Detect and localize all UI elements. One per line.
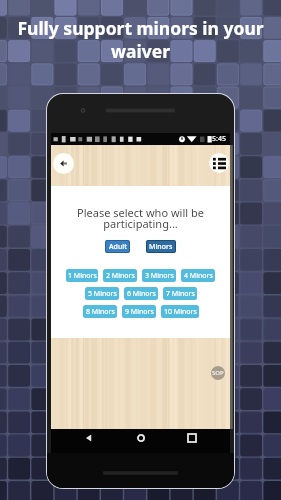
staticText: Minors [149,242,173,252]
button[interactable]: Adult [106,241,129,252]
staticText: 8 Minors [86,307,115,317]
staticText: 1 Minors [68,271,97,281]
staticText: 4 Minors [184,271,213,281]
staticText: 7 Minors [166,289,195,299]
button[interactable]: Minors [147,241,175,252]
button[interactable]: 2 Minors [103,269,137,282]
button[interactable]: 6 Minors [124,287,158,300]
button[interactable]: 10 Minors [161,305,199,318]
staticText: 5 Minors [88,289,117,299]
button[interactable]: 9 Minors [122,305,156,318]
staticText: 6 Minors [127,289,156,299]
staticText: 10 Minors [164,307,197,317]
button[interactable]: 4 Minors [181,269,215,282]
button[interactable]: 3 Minors [142,269,176,282]
button[interactable]: Back [53,153,74,174]
staticText: Please select who will be participating.… [75,205,206,232]
button[interactable]: Home [132,429,150,447]
button[interactable]: 5 Minors [85,287,119,300]
staticText: 3 Minors [145,271,174,281]
staticText: Fully support minors in your waiver [11,16,270,64]
staticText: SOP [212,369,224,377]
button[interactable]: Recents [183,429,201,447]
staticText: 9 Minors [125,307,154,317]
button[interactable]: Back [80,429,98,447]
staticText: Adult [109,242,127,252]
button[interactable]: 8 Minors [83,305,117,318]
button[interactable]: 7 Minors [163,287,197,300]
staticText: 5:45 [212,134,226,144]
button[interactable]: Support [211,366,225,380]
staticText: 2 Minors [106,271,135,281]
button[interactable]: Menu [209,153,229,173]
button[interactable]: 1 Minors [66,269,98,282]
